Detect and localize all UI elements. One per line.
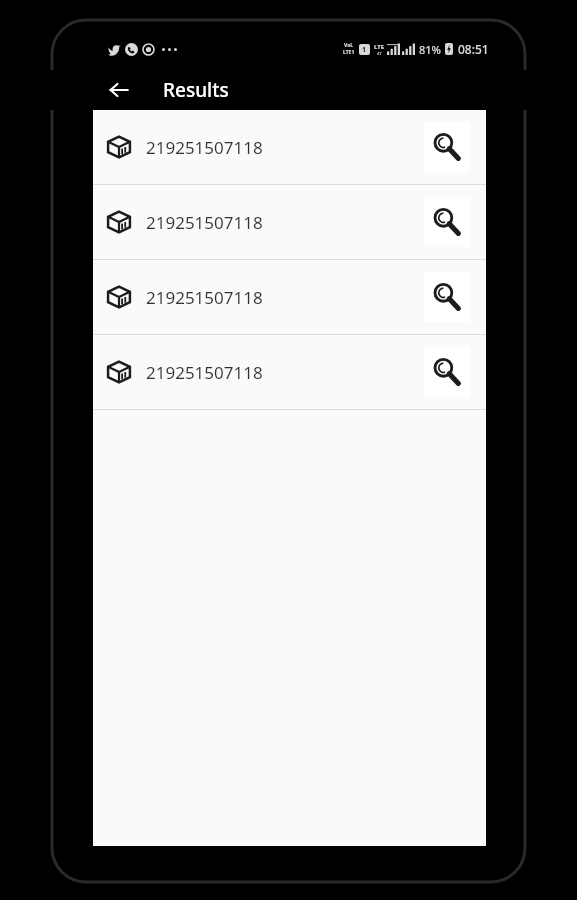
button[interactable]: Search details (424, 122, 470, 172)
staticText: 4T (377, 51, 382, 56)
staticText: LTE (374, 43, 385, 51)
button[interactable]: Search details (424, 197, 470, 247)
button[interactable]: Search details (424, 347, 470, 397)
staticText: LTE1 (343, 49, 355, 56)
staticText: 219251507118 (146, 211, 263, 234)
staticText: 81% (419, 42, 441, 57)
button[interactable]: 219251507118 (93, 335, 486, 409)
button[interactable]: Search details (424, 272, 470, 322)
button[interactable]: 219251507118 (93, 260, 486, 334)
staticText: 219251507118 (146, 286, 263, 309)
staticText: 1 (362, 45, 367, 55)
staticText: VoL (344, 42, 354, 49)
button[interactable]: 219251507118 (93, 185, 486, 259)
button[interactable]: 219251507118 (93, 110, 486, 184)
button[interactable]: Back (100, 71, 138, 109)
staticText: 219251507118 (146, 361, 263, 384)
staticText: 219251507118 (146, 136, 263, 159)
staticText: 08:51 (458, 41, 489, 57)
staticText: Results (163, 77, 229, 103)
